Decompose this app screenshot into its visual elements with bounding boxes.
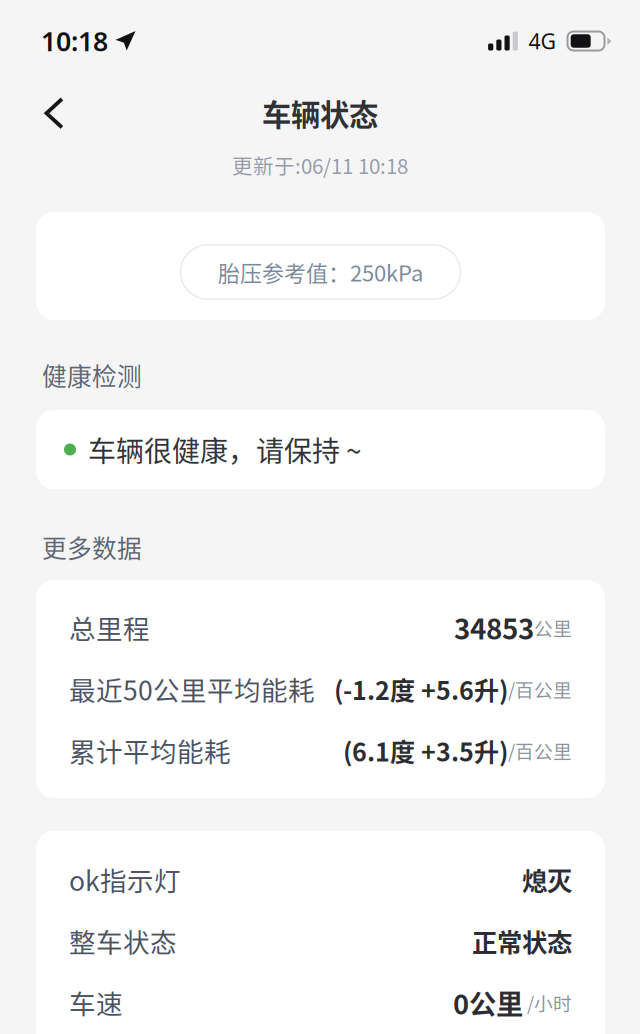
button[interactable]: 返回 <box>22 82 86 144</box>
staticText: /小时 <box>523 989 572 1016</box>
staticText: 车速 <box>69 983 123 1022</box>
staticText: (-1.2度 +5.6升) <box>334 671 508 707</box>
staticText: 总里程 <box>69 608 150 647</box>
staticText: 4G <box>528 27 556 55</box>
staticText: 10:18 <box>41 23 108 59</box>
staticText: /百公里 <box>508 737 572 764</box>
staticText: /百公里 <box>508 675 572 702</box>
staticText: 车辆很健康，请保持 ~ <box>88 429 362 470</box>
staticText: 更多数据 <box>42 529 142 565</box>
staticText: 累计平均能耗 <box>69 731 231 770</box>
staticText: ok指示灯 <box>69 860 181 899</box>
staticText: 车辆状态 <box>262 92 378 134</box>
staticText: (6.1度 +3.5升) <box>343 732 508 769</box>
staticText: 胎压参考值：250kPa <box>218 256 423 288</box>
staticText: 34853 <box>454 607 534 648</box>
staticText: 健康检测 <box>42 357 142 393</box>
staticText: 0公里 <box>453 983 523 1022</box>
staticText: 熄灭 <box>522 861 572 898</box>
staticText: 公里 <box>534 614 572 641</box>
staticText: 正常状态 <box>472 923 572 959</box>
staticText: 最近50公里平均能耗 <box>69 670 315 708</box>
staticText: 整车状态 <box>69 922 177 960</box>
staticText: 更新于:06/11 10:18 <box>232 150 408 180</box>
